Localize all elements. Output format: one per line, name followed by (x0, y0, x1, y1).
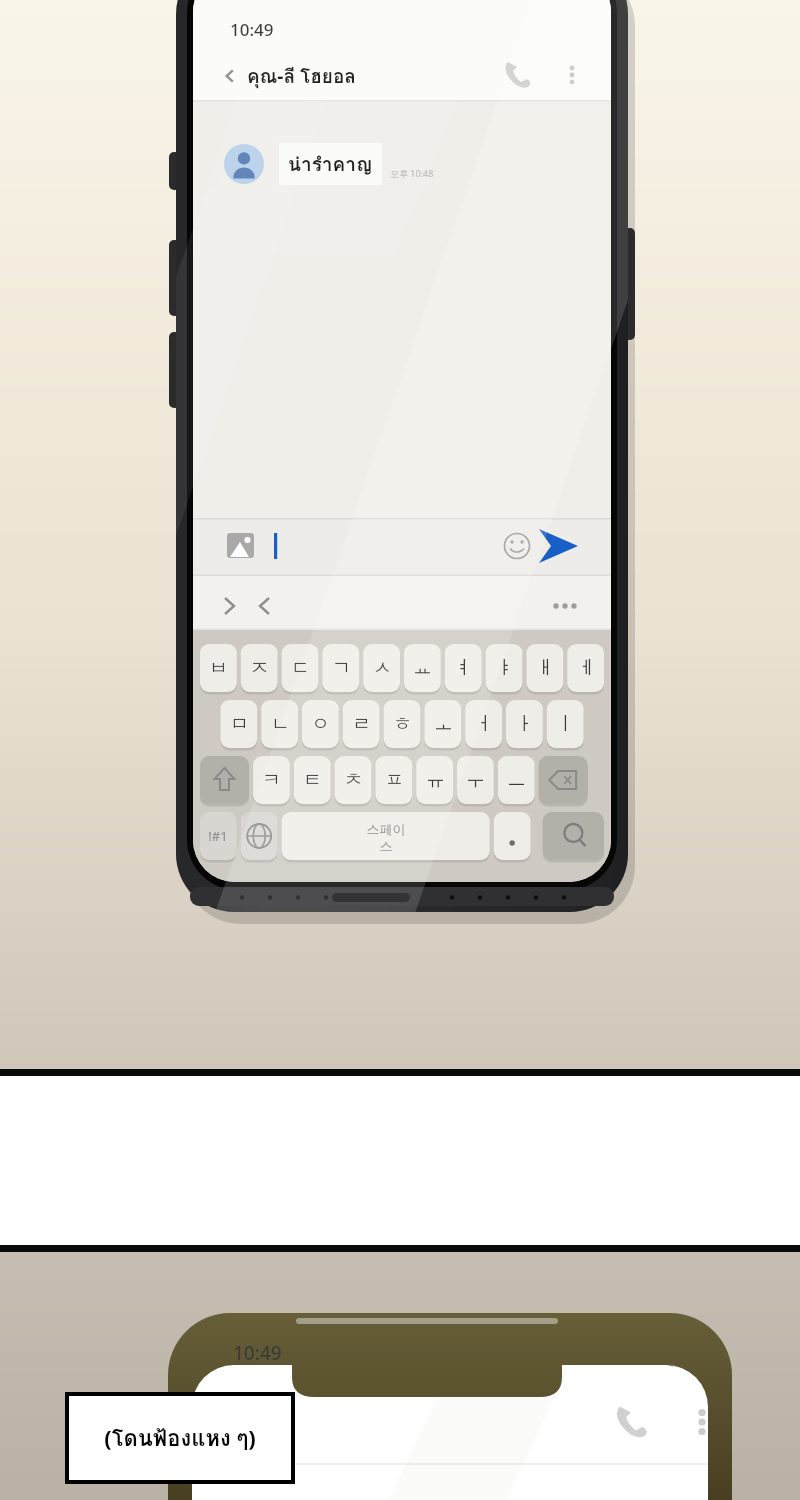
button[interactable]: ㅑ (480, 653, 528, 683)
staticText: ㅠ (426, 768, 445, 792)
staticText: ㅅ (373, 656, 392, 680)
staticText: ㅋ (262, 768, 281, 792)
button[interactable]: ㅓ (460, 709, 508, 739)
staticText: ㅌ (303, 768, 322, 792)
staticText: ㅁ (230, 712, 249, 736)
staticText: ㄹ (352, 712, 371, 736)
button[interactable]: ㅇ (296, 709, 344, 739)
button[interactable]: ㅍ (370, 765, 418, 795)
staticText: ㅈ (250, 656, 269, 680)
staticText: ㄴ (271, 712, 290, 736)
staticText: ㅛ (413, 656, 432, 680)
button[interactable]: ㅎ (378, 709, 426, 739)
staticText: ㅔ (577, 656, 596, 680)
button[interactable]: ㅅ (358, 653, 406, 683)
button[interactable]: (โดนฟ้องแหง ๆ) (69, 1396, 291, 1480)
staticText: ㅇ (311, 712, 330, 736)
button[interactable]: ㄱ (317, 653, 365, 683)
staticText: ㅊ (344, 768, 363, 792)
staticText: ㅡ (507, 768, 526, 792)
other: Back (220, 66, 240, 86)
staticText: ㄷ (291, 656, 310, 680)
button[interactable]: ㅊ (329, 765, 377, 795)
button[interactable]: ㅐ (521, 653, 569, 683)
staticText: ㅎ (393, 712, 412, 736)
button[interactable]: ㅡ (492, 765, 540, 795)
staticText: ㅑ (495, 656, 514, 680)
staticText: ㅜ (466, 768, 485, 792)
staticText: น่ารำคาญ (288, 149, 373, 179)
staticText: ㅐ (536, 656, 555, 680)
staticText: 10:49 (233, 1340, 282, 1366)
staticText: !#1 (208, 827, 228, 845)
button[interactable]: น่ารำคาญ (224, 143, 434, 185)
button[interactable]: ㄹ (337, 709, 385, 739)
button[interactable]: ㅜ (451, 765, 499, 795)
button[interactable]: ㄷ (276, 653, 324, 683)
button[interactable]: ㅌ (288, 765, 336, 795)
button[interactable]: More options (549, 52, 595, 98)
button[interactable]: ㅏ (500, 709, 548, 739)
button[interactable]: ㅁ (215, 709, 263, 739)
button[interactable]: Back (220, 55, 420, 97)
staticText: 스페이스 (362, 821, 410, 851)
staticText: ㅂ (209, 656, 228, 680)
button[interactable]: !#1 (194, 821, 242, 851)
button[interactable]: ㅣ (541, 709, 589, 739)
button[interactable]: ㅂ (194, 653, 242, 683)
staticText: 10:49 (230, 18, 274, 41)
button[interactable]: ㅠ (411, 765, 459, 795)
button[interactable]: ㅕ (439, 653, 487, 683)
button[interactable]: ㅋ (247, 765, 295, 795)
staticText: (โดนฟ้องแหง ๆ) (104, 1421, 256, 1456)
button[interactable]: Call (495, 52, 541, 98)
button[interactable]: ㄴ (256, 709, 304, 739)
button[interactable]: 스페이스 (362, 821, 410, 851)
staticText: ㅓ (475, 712, 494, 736)
staticText: คุณ-ลี โฮยอล (247, 61, 356, 91)
staticText: ㅕ (454, 656, 473, 680)
button[interactable]: ㅗ (419, 709, 467, 739)
button[interactable]: More options (677, 1397, 727, 1447)
staticText: ㅏ (515, 712, 534, 736)
button[interactable]: ㅛ (398, 653, 446, 683)
button[interactable]: Call (607, 1397, 657, 1447)
staticText: ㄱ (332, 656, 351, 680)
staticText: ㅣ (556, 712, 575, 736)
staticText: ㅗ (434, 712, 453, 736)
staticText: ㅍ (385, 768, 404, 792)
button[interactable]: ㅈ (235, 653, 283, 683)
button[interactable]: ㅔ (562, 653, 610, 683)
staticText: 오후 10:48 (390, 167, 434, 179)
